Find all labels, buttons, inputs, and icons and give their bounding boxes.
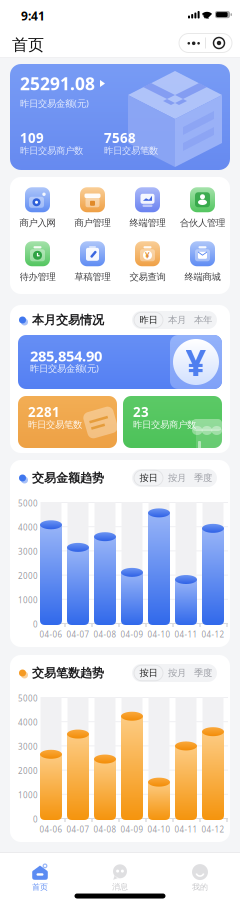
staticText: 5000 xyxy=(18,498,38,509)
button[interactable]: 23 xyxy=(123,396,222,448)
button[interactable]: ¥ xyxy=(120,241,175,283)
staticText: 23 xyxy=(133,403,149,421)
button[interactable]: 终端管理 xyxy=(120,187,175,229)
staticText: 1000 xyxy=(18,790,38,800)
staticText: 昨日交易商户数 xyxy=(20,145,83,156)
staticText: 4000 xyxy=(18,717,38,728)
button[interactable]: 25291.08 xyxy=(10,64,230,170)
staticText: 0 xyxy=(33,814,38,825)
button[interactable]: 季度 xyxy=(190,664,216,682)
staticText: 交易查询 xyxy=(129,271,165,283)
staticText: 商户入网 xyxy=(19,217,55,229)
button[interactable]: More / Close xyxy=(179,33,232,52)
staticText: 5000 xyxy=(18,693,38,704)
staticText: 04-09 xyxy=(120,629,143,640)
staticText: 285,854.90 xyxy=(30,346,102,365)
staticText: 按日 xyxy=(139,667,157,679)
staticText: 3000 xyxy=(18,546,38,557)
button[interactable]: 商户管理 xyxy=(65,187,120,229)
staticText: 本年 xyxy=(194,314,212,326)
button[interactable]: 我的 xyxy=(160,861,240,895)
staticText: 109 xyxy=(20,129,44,147)
staticText: 25291.08 xyxy=(20,72,95,95)
staticText: 04-07 xyxy=(66,824,89,835)
staticText: 昨日交易笔数 xyxy=(104,145,158,156)
staticText: 04-12 xyxy=(201,629,224,640)
staticText: 昨日交易笔数 xyxy=(28,419,82,430)
button[interactable]: 商户入网 xyxy=(10,187,65,229)
button[interactable]: 2281 xyxy=(18,396,117,448)
staticText: 按日 xyxy=(139,472,157,484)
staticText: 04-10 xyxy=(147,629,170,640)
staticText: 季度 xyxy=(194,472,212,484)
staticText: 0 xyxy=(33,619,38,630)
staticText: 2281 xyxy=(28,403,60,421)
staticText: 2000 xyxy=(18,766,38,776)
button[interactable]: 本月 xyxy=(164,311,190,329)
staticText: 2000 xyxy=(18,571,38,581)
staticText: 04-11 xyxy=(174,629,197,640)
staticText: 本月交易情况 xyxy=(32,313,104,327)
staticText: 季度 xyxy=(194,667,212,679)
staticText: 04-10 xyxy=(147,824,170,835)
staticText: 3000 xyxy=(18,741,38,752)
staticText: 4000 xyxy=(18,522,38,533)
staticText: 商户管理 xyxy=(74,217,110,229)
button[interactable]: 消息 xyxy=(80,861,160,895)
staticText: ¥ xyxy=(185,338,206,386)
staticText: 04-09 xyxy=(120,824,143,835)
button[interactable]: 终端商城 xyxy=(175,241,230,283)
staticText: 9:41 xyxy=(21,8,45,24)
staticText: ¥ xyxy=(145,250,150,261)
staticText: 首页 xyxy=(12,35,44,55)
staticText: 04-12 xyxy=(201,824,224,835)
staticText: 终端商城 xyxy=(184,271,220,283)
button[interactable]: 待办管理 xyxy=(10,241,65,283)
staticText: 按月 xyxy=(168,472,186,484)
button[interactable]: 季度 xyxy=(190,469,216,487)
staticText: 7568 xyxy=(104,129,136,147)
button[interactable]: 草稿管理 xyxy=(65,241,120,283)
button[interactable]: 首页 xyxy=(0,861,80,895)
staticText: 本月 xyxy=(168,314,186,326)
button[interactable]: 昨日 xyxy=(133,311,164,329)
staticText: 04-08 xyxy=(93,629,116,640)
staticText: 我的 xyxy=(192,882,208,892)
staticText: 04-06 xyxy=(39,629,62,640)
staticText: 终端管理 xyxy=(129,217,165,229)
staticText: 消息 xyxy=(112,882,128,892)
staticText: 04-06 xyxy=(39,824,62,835)
button[interactable]: ¥ xyxy=(18,335,222,389)
button[interactable]: 合伙人管理 xyxy=(175,187,230,229)
staticText: 草稿管理 xyxy=(74,271,110,283)
staticText: 04-08 xyxy=(93,824,116,835)
staticText: 昨日交易金额(元) xyxy=(30,362,99,374)
staticText: 按月 xyxy=(168,667,186,679)
staticText: 待办管理 xyxy=(19,271,55,283)
button[interactable]: 按日 xyxy=(133,469,164,487)
button[interactable]: 本年 xyxy=(190,311,216,329)
staticText: 首页 xyxy=(32,882,48,892)
button[interactable]: 按日 xyxy=(133,664,164,682)
staticText: 1000 xyxy=(18,595,38,605)
staticText: 合伙人管理 xyxy=(180,217,225,229)
staticText: 交易金额趋势 xyxy=(32,471,104,485)
staticText: 04-11 xyxy=(174,824,197,835)
staticText: 昨日交易商户数 xyxy=(133,419,196,430)
staticText: 交易笔数趋势 xyxy=(32,666,104,680)
staticText: 04-07 xyxy=(66,629,89,640)
button[interactable]: 按月 xyxy=(164,664,190,682)
button[interactable]: 按月 xyxy=(164,469,190,487)
staticText: 昨日 xyxy=(139,314,157,326)
staticText: 昨日交易金额(元) xyxy=(20,97,89,109)
